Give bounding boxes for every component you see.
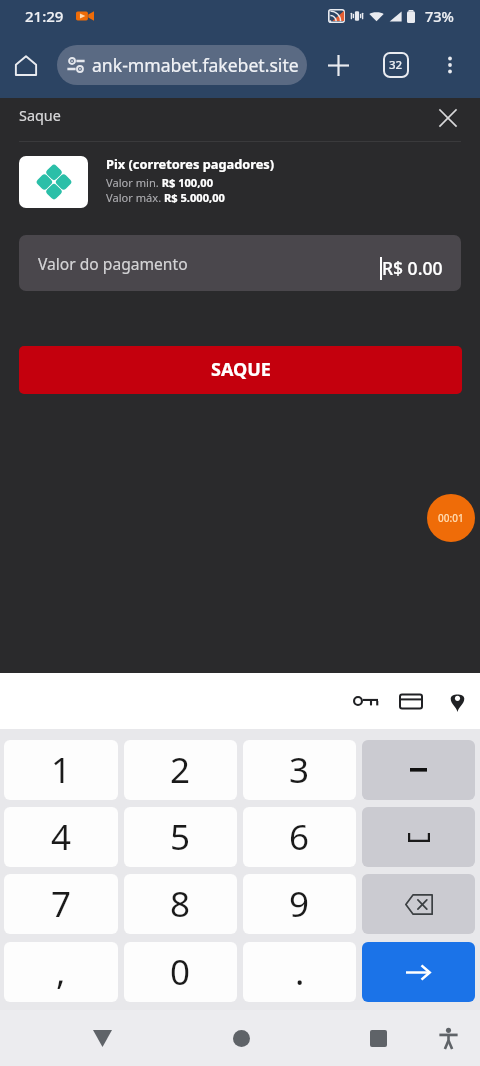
- button[interactable]: New tab: [307, 40, 369, 90]
- button[interactable]: Space: [362, 807, 475, 867]
- button[interactable]: Timer: [427, 494, 475, 542]
- staticText: SAQUE: [211, 357, 271, 382]
- button[interactable]: 3: [243, 740, 356, 800]
- button[interactable]: Close: [432, 102, 464, 134]
- button[interactable]: Home: [0, 40, 51, 90]
- staticText: 9: [289, 880, 310, 928]
- button[interactable]: Addresses: [442, 686, 472, 716]
- staticText: Saque: [19, 106, 61, 126]
- button[interactable]: .: [243, 942, 356, 1002]
- staticText: 4: [51, 813, 72, 861]
- staticText: 73%: [425, 6, 454, 26]
- staticText: 6: [289, 813, 310, 861]
- button[interactable]: Back: [62, 1012, 142, 1064]
- button[interactable]: Backspace: [362, 874, 475, 934]
- button[interactable]: Payment methods: [396, 686, 426, 716]
- button[interactable]: Accessibility: [422, 1012, 474, 1064]
- button[interactable]: 8: [124, 874, 237, 934]
- button[interactable]: Valor do pagamento: [19, 235, 461, 291]
- button[interactable]: ,: [4, 942, 118, 1002]
- button[interactable]: More options: [419, 40, 480, 90]
- button[interactable]: Enter: [362, 942, 475, 1002]
- staticText: 0: [170, 948, 191, 996]
- button[interactable]: Passwords: [350, 686, 380, 716]
- staticText: 21:29: [25, 6, 64, 26]
- button[interactable]: 1: [4, 740, 118, 800]
- staticText: R$ 0.00: [382, 256, 443, 280]
- staticText: .: [295, 948, 305, 996]
- staticText: Pix (corretores pagadores): [106, 155, 275, 172]
- button[interactable]: ank-mmabet.fakebet.site: [57, 45, 307, 85]
- staticText: ank-mmabet.fakebet.site: [92, 53, 299, 77]
- button[interactable]: 9: [243, 874, 356, 934]
- staticText: Valor do pagamento: [38, 253, 188, 274]
- staticText: 8: [170, 880, 191, 928]
- staticText: 3: [289, 746, 310, 794]
- staticText: 7: [51, 880, 72, 928]
- staticText: 1: [51, 746, 72, 794]
- button[interactable]: Tabs: 32: [373, 40, 419, 90]
- staticText: 32: [389, 57, 403, 73]
- button[interactable]: 0: [124, 942, 237, 1002]
- staticText: 2: [170, 746, 191, 794]
- staticText: Valor máx. R$ 5.000,00: [106, 190, 225, 205]
- button[interactable]: 4: [4, 807, 118, 867]
- staticText: Valor min. R$ 100,00: [106, 175, 214, 190]
- button[interactable]: SAQUE: [19, 346, 462, 394]
- button[interactable]: 5: [124, 807, 237, 867]
- staticText: ,: [56, 948, 66, 996]
- button[interactable]: 7: [4, 874, 118, 934]
- button[interactable]: Home: [201, 1012, 281, 1064]
- button[interactable]: Dash: [362, 740, 475, 800]
- staticText: 5: [170, 813, 191, 861]
- button[interactable]: 2: [124, 740, 237, 800]
- staticText: 00:01: [438, 511, 464, 525]
- button[interactable]: Recents: [338, 1012, 418, 1064]
- button[interactable]: 6: [243, 807, 356, 867]
